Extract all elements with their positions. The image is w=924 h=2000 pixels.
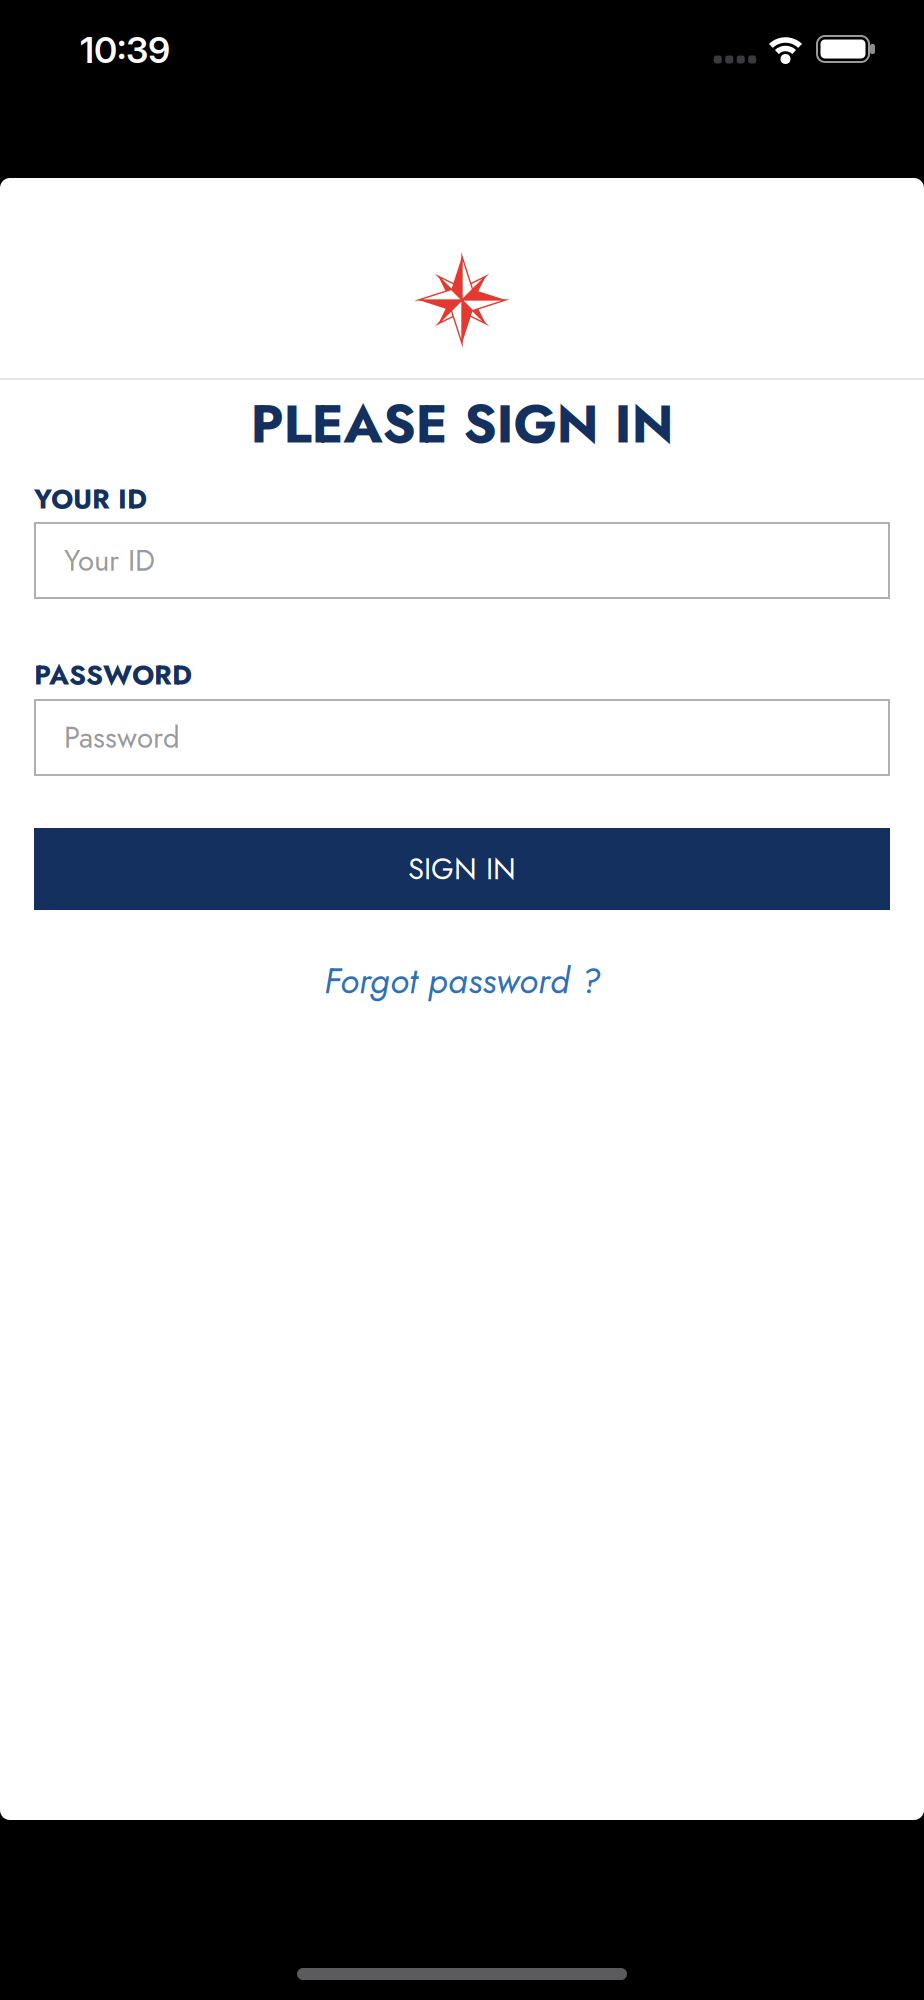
button[interactable]: Forgot password ? <box>324 955 600 1007</box>
button[interactable]: Your ID <box>34 522 890 599</box>
staticText: SIGN IN <box>408 848 516 890</box>
button[interactable]: Password <box>34 699 890 776</box>
staticText: Your ID <box>64 539 155 582</box>
staticText: 10:39 <box>80 28 170 72</box>
staticText: Forgot password ? <box>324 955 600 1007</box>
staticText: PASSWORD <box>34 655 192 695</box>
staticText: Password <box>64 716 180 759</box>
button[interactable]: SIGN IN <box>34 828 890 910</box>
staticText: PLEASE SIGN IN <box>250 385 673 463</box>
staticText: YOUR ID <box>34 479 147 519</box>
